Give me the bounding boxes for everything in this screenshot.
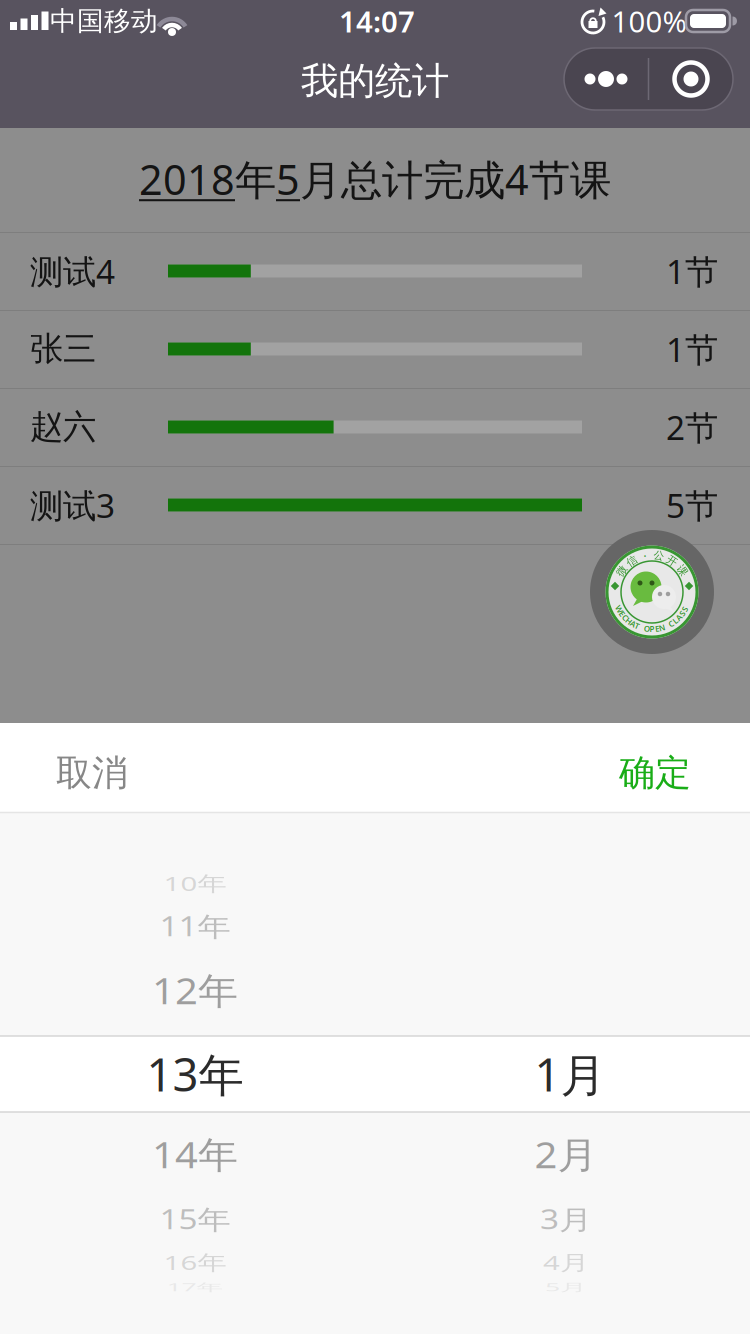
button[interactable]: More (564, 48, 648, 110)
staticText: 11年 (159, 904, 230, 948)
staticText: 公 (654, 549, 665, 562)
staticText: A (676, 612, 681, 623)
staticText: 16年 (163, 1242, 226, 1281)
staticText: 2018年5月总计完成4节课 (139, 152, 611, 206)
staticText: 赵六 (30, 406, 96, 447)
staticText: 17年 (166, 1269, 223, 1305)
staticText: E (620, 608, 624, 619)
staticText: P (649, 624, 654, 634)
staticText: 14:07 (339, 1, 415, 40)
staticText: 1节 (666, 249, 718, 293)
staticText: 信 (626, 554, 637, 567)
staticText: L (673, 615, 677, 626)
staticText: 100% (611, 1, 686, 40)
staticText: T (635, 621, 640, 631)
staticText: A (630, 618, 635, 629)
staticText: S (680, 608, 684, 619)
staticText: 15年 (159, 1197, 230, 1241)
staticText: 微 (616, 564, 627, 577)
button[interactable]: 2018年5月总计完成4节课 (139, 152, 611, 206)
staticText: O (644, 623, 650, 634)
button[interactable]: 取消 (22, 728, 162, 818)
staticText: 5月 (545, 1269, 587, 1305)
button[interactable]: Exit mini program (649, 48, 733, 110)
staticText: 张三 (30, 328, 96, 369)
staticText: · (643, 549, 646, 563)
staticText: 我的统计 (301, 58, 449, 104)
staticText: H (626, 615, 632, 626)
staticText: E (655, 623, 659, 634)
staticText: 2月 (534, 1127, 597, 1180)
button[interactable]: 确定 (585, 728, 725, 818)
staticText: 10年 (163, 863, 226, 902)
staticText: 确定 (619, 751, 691, 795)
staticText: 1节 (666, 327, 718, 371)
staticText: 测试3 (30, 483, 115, 527)
staticText: C (669, 618, 674, 629)
staticText: 测试4 (30, 249, 115, 293)
staticText: 13年 (146, 1044, 243, 1104)
staticText: 取消 (56, 751, 128, 795)
staticText: N (659, 622, 665, 633)
staticText: W (615, 604, 623, 615)
staticText: 1月 (534, 1044, 605, 1104)
staticText: S (683, 604, 687, 615)
staticText: 4月 (543, 1242, 589, 1281)
staticText: 14年 (152, 1127, 238, 1180)
staticText: 2节 (666, 405, 718, 449)
staticText: 5节 (666, 483, 718, 527)
staticText: 开 (667, 554, 678, 567)
staticText: 中国移动 (50, 5, 158, 37)
staticText: C (623, 612, 628, 623)
staticText: 12年 (152, 963, 238, 1016)
staticText: 3月 (540, 1197, 592, 1241)
staticText: 课 (677, 564, 688, 577)
